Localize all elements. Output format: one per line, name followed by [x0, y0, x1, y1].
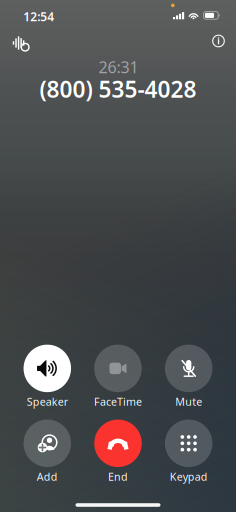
button[interactable]: Call info	[0, 0, 236, 512]
staticText: 26:31	[98, 56, 138, 78]
button[interactable]: End	[0, 0, 236, 512]
button[interactable]: Audio effects	[0, 0, 236, 512]
button[interactable]: Mute	[0, 0, 236, 512]
staticText: 12:54	[23, 9, 54, 24]
staticText: Speaker	[27, 394, 68, 409]
staticText: End	[108, 469, 128, 484]
staticText: (800) 535-4028	[39, 74, 196, 104]
staticText: FaceTime	[94, 394, 142, 409]
staticText: Mute	[175, 394, 202, 409]
staticText: Add	[37, 469, 58, 484]
button[interactable]: FaceTime	[0, 0, 236, 512]
button[interactable]: Speaker	[0, 0, 236, 512]
button[interactable]: Add	[0, 0, 236, 512]
button[interactable]: Keypad	[0, 0, 236, 512]
staticText: Keypad	[170, 469, 208, 484]
